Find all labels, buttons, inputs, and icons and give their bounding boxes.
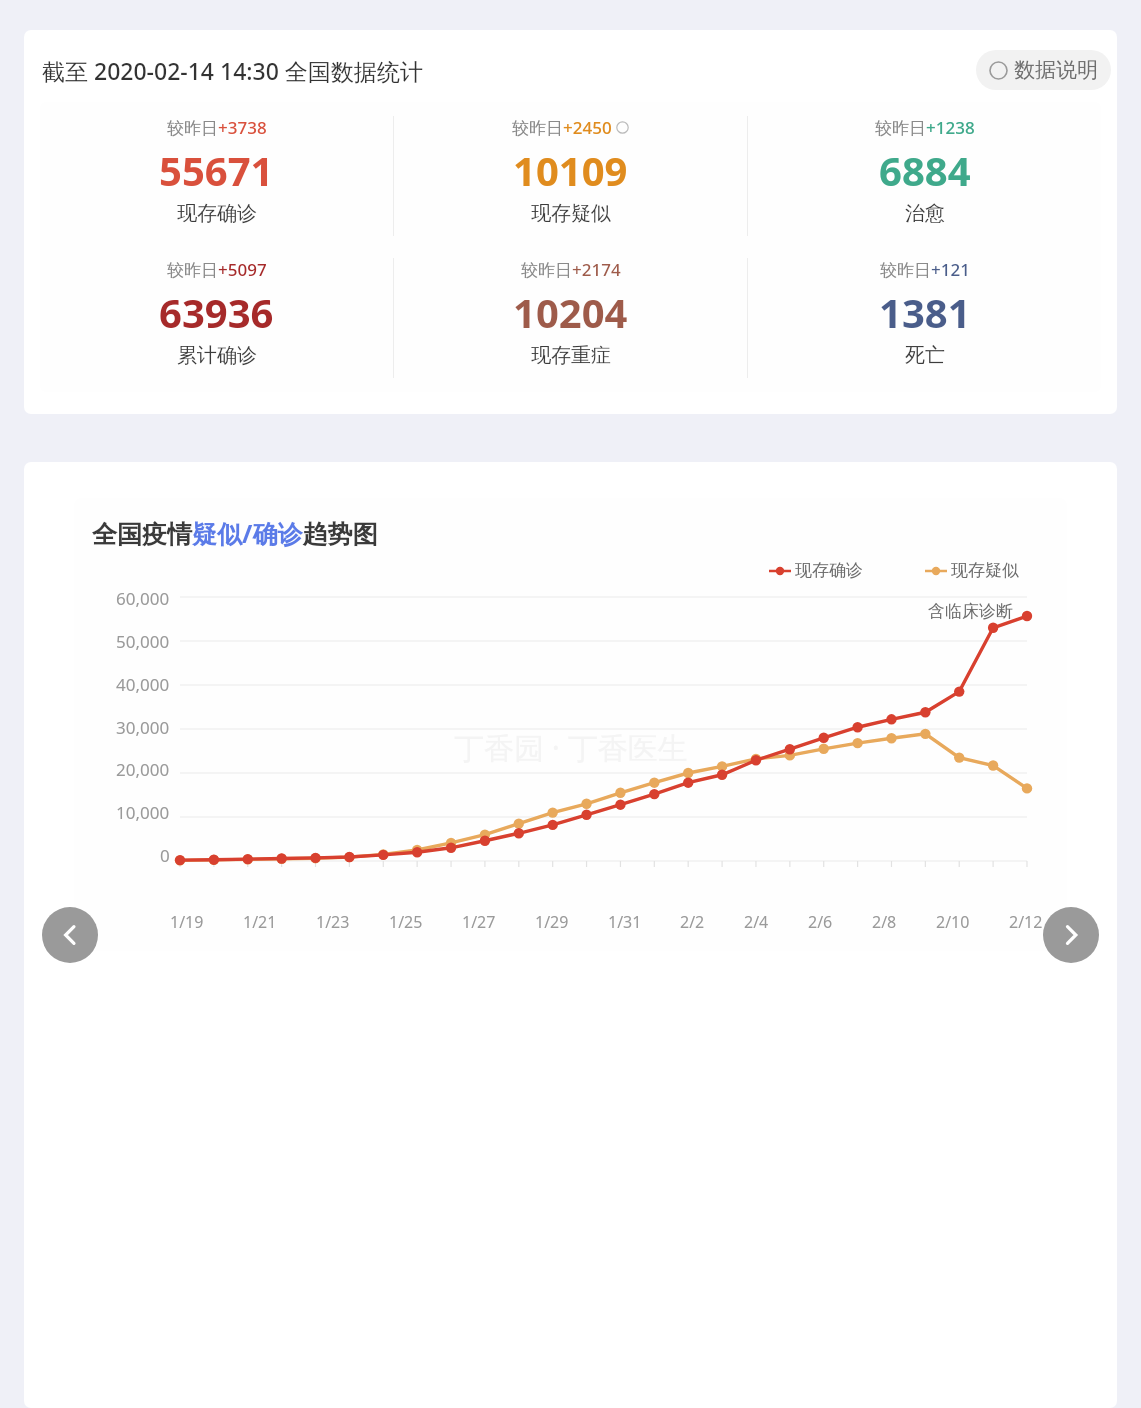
staticText: 2/2 bbox=[680, 911, 705, 933]
staticText: 1/19 bbox=[170, 911, 204, 933]
staticText: 6884 bbox=[879, 143, 971, 197]
staticText: 40,000 bbox=[116, 673, 170, 696]
staticText: 63936 bbox=[159, 285, 274, 339]
button[interactable]: 数据说明 bbox=[976, 50, 1111, 90]
staticText: 现存疑似 bbox=[951, 560, 1019, 581]
staticText: 2/6 bbox=[808, 911, 833, 933]
staticText: 较昨日+2450 bbox=[512, 116, 612, 139]
staticText: 30,000 bbox=[116, 716, 170, 739]
staticText: 2/12 bbox=[1009, 911, 1043, 933]
staticText: 1/23 bbox=[316, 911, 350, 933]
staticText: 1/27 bbox=[462, 911, 496, 933]
staticText: 10,000 bbox=[116, 801, 170, 824]
staticText: 全国疫情疑似/确诊趋势图 bbox=[92, 516, 378, 550]
staticText: 数据说明 bbox=[1014, 57, 1098, 83]
staticText: 1/29 bbox=[535, 911, 569, 933]
staticText: 现存确诊 bbox=[795, 560, 863, 581]
staticText: 较昨日+1238 bbox=[875, 116, 975, 139]
button[interactable]: 较昨日+2450 bbox=[394, 116, 747, 226]
button[interactable]: Previous chart bbox=[42, 907, 98, 963]
button[interactable]: 较昨日+2174 bbox=[394, 258, 747, 368]
staticText: 1/25 bbox=[389, 911, 423, 933]
staticText: 截至 2020-02-14 14:30 全国数据统计 bbox=[42, 55, 423, 86]
button[interactable]: Next chart bbox=[1043, 907, 1099, 963]
button[interactable]: 较昨日+3738 bbox=[40, 116, 393, 226]
staticText: 较昨日+5097 bbox=[167, 258, 267, 281]
staticText: 50,000 bbox=[116, 630, 170, 653]
staticText: 现存疑似 bbox=[531, 201, 611, 226]
staticText: 治愈 bbox=[905, 201, 945, 226]
staticText: 累计确诊 bbox=[177, 343, 257, 368]
staticText: 10204 bbox=[513, 285, 628, 339]
staticText: 20,000 bbox=[116, 758, 170, 781]
staticText: 较昨日+121 bbox=[880, 258, 970, 281]
staticText: 2/10 bbox=[936, 911, 970, 933]
staticText: 2/8 bbox=[872, 911, 897, 933]
staticText: 55671 bbox=[159, 143, 274, 197]
staticText: 2/4 bbox=[744, 911, 769, 933]
staticText: 1/21 bbox=[243, 911, 277, 933]
button[interactable]: 较昨日+1238 bbox=[748, 116, 1101, 226]
staticText: 现存确诊 bbox=[177, 201, 257, 226]
staticText: 60,000 bbox=[116, 587, 170, 610]
button[interactable]: 较昨日+121 bbox=[748, 258, 1101, 368]
staticText: 现存重症 bbox=[531, 343, 611, 368]
staticText: 丁香园 · 丁香医生 bbox=[454, 727, 688, 768]
button[interactable]: 较昨日+5097 bbox=[40, 258, 393, 368]
staticText: 含临床诊断 bbox=[928, 601, 1013, 622]
staticText: 1/31 bbox=[608, 911, 642, 933]
staticText: 较昨日+3738 bbox=[167, 116, 267, 139]
staticText: 1381 bbox=[879, 285, 971, 339]
staticText: 0 bbox=[160, 844, 170, 867]
staticText: 较昨日+2174 bbox=[521, 258, 621, 281]
staticText: 10109 bbox=[513, 143, 628, 197]
staticText: 死亡 bbox=[905, 343, 945, 368]
